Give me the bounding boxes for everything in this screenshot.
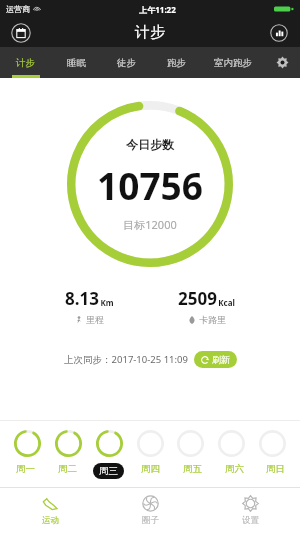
button[interactable]: 周一 xyxy=(8,463,42,475)
button[interactable]: 睡眠 xyxy=(51,47,101,78)
staticText: Km xyxy=(100,297,114,308)
button[interactable]: 计步 xyxy=(0,47,51,78)
staticText: 目标12000 xyxy=(123,217,177,232)
button[interactable]: 刷新 xyxy=(194,351,237,368)
staticText: 8.13 xyxy=(65,287,99,310)
button[interactable]: 室内跑步 xyxy=(201,47,264,78)
staticText: 周二 xyxy=(58,463,77,475)
button[interactable]: 周四 xyxy=(133,463,167,475)
staticText: 圈子 xyxy=(142,515,159,526)
staticText: 跑步 xyxy=(167,57,186,69)
staticText: 运营商 xyxy=(6,4,30,14)
button[interactable]: 周六 xyxy=(217,463,251,475)
staticText: Kcal xyxy=(218,297,235,308)
button[interactable]: 周五 xyxy=(175,463,209,475)
staticText: 今日步数 xyxy=(126,137,174,152)
staticText: 设置 xyxy=(242,515,259,526)
staticText: 周五 xyxy=(183,463,202,475)
staticText: 睡眠 xyxy=(67,57,86,69)
staticText: 上午11:22 xyxy=(139,4,176,15)
staticText: 计步 xyxy=(135,23,165,42)
staticText: 运动 xyxy=(42,515,59,526)
staticText: 室内跑步 xyxy=(214,57,252,69)
button[interactable]: 周二 xyxy=(50,463,84,475)
staticText: 周四 xyxy=(141,463,160,475)
button[interactable]: Settings xyxy=(264,47,300,78)
staticText: 卡路里 xyxy=(199,314,226,325)
button[interactable]: 设置 xyxy=(200,488,300,533)
staticText: 10756 xyxy=(97,160,203,210)
button[interactable]: 周日 xyxy=(258,463,292,475)
staticText: 计步 xyxy=(16,57,35,69)
staticText: 周一 xyxy=(16,463,35,475)
staticText: 周六 xyxy=(225,463,244,475)
staticText: 2509 xyxy=(178,287,217,310)
button[interactable]: 运动 xyxy=(0,488,100,533)
button[interactable]: Calendar xyxy=(10,22,32,44)
staticText: 周日 xyxy=(266,463,285,475)
staticText: 刷新 xyxy=(212,354,230,365)
staticText: 上次同步：2017-10-25 11:09 xyxy=(64,353,188,366)
staticText: 徒步 xyxy=(117,57,136,69)
button[interactable]: Statistics xyxy=(268,22,290,44)
button[interactable]: 跑步 xyxy=(151,47,201,78)
button[interactable]: 周三 xyxy=(91,463,125,479)
button[interactable]: 徒步 xyxy=(101,47,151,78)
staticText: 里程 xyxy=(86,314,104,325)
button[interactable]: 圈子 xyxy=(100,488,200,533)
staticText: 周三 xyxy=(99,465,118,477)
